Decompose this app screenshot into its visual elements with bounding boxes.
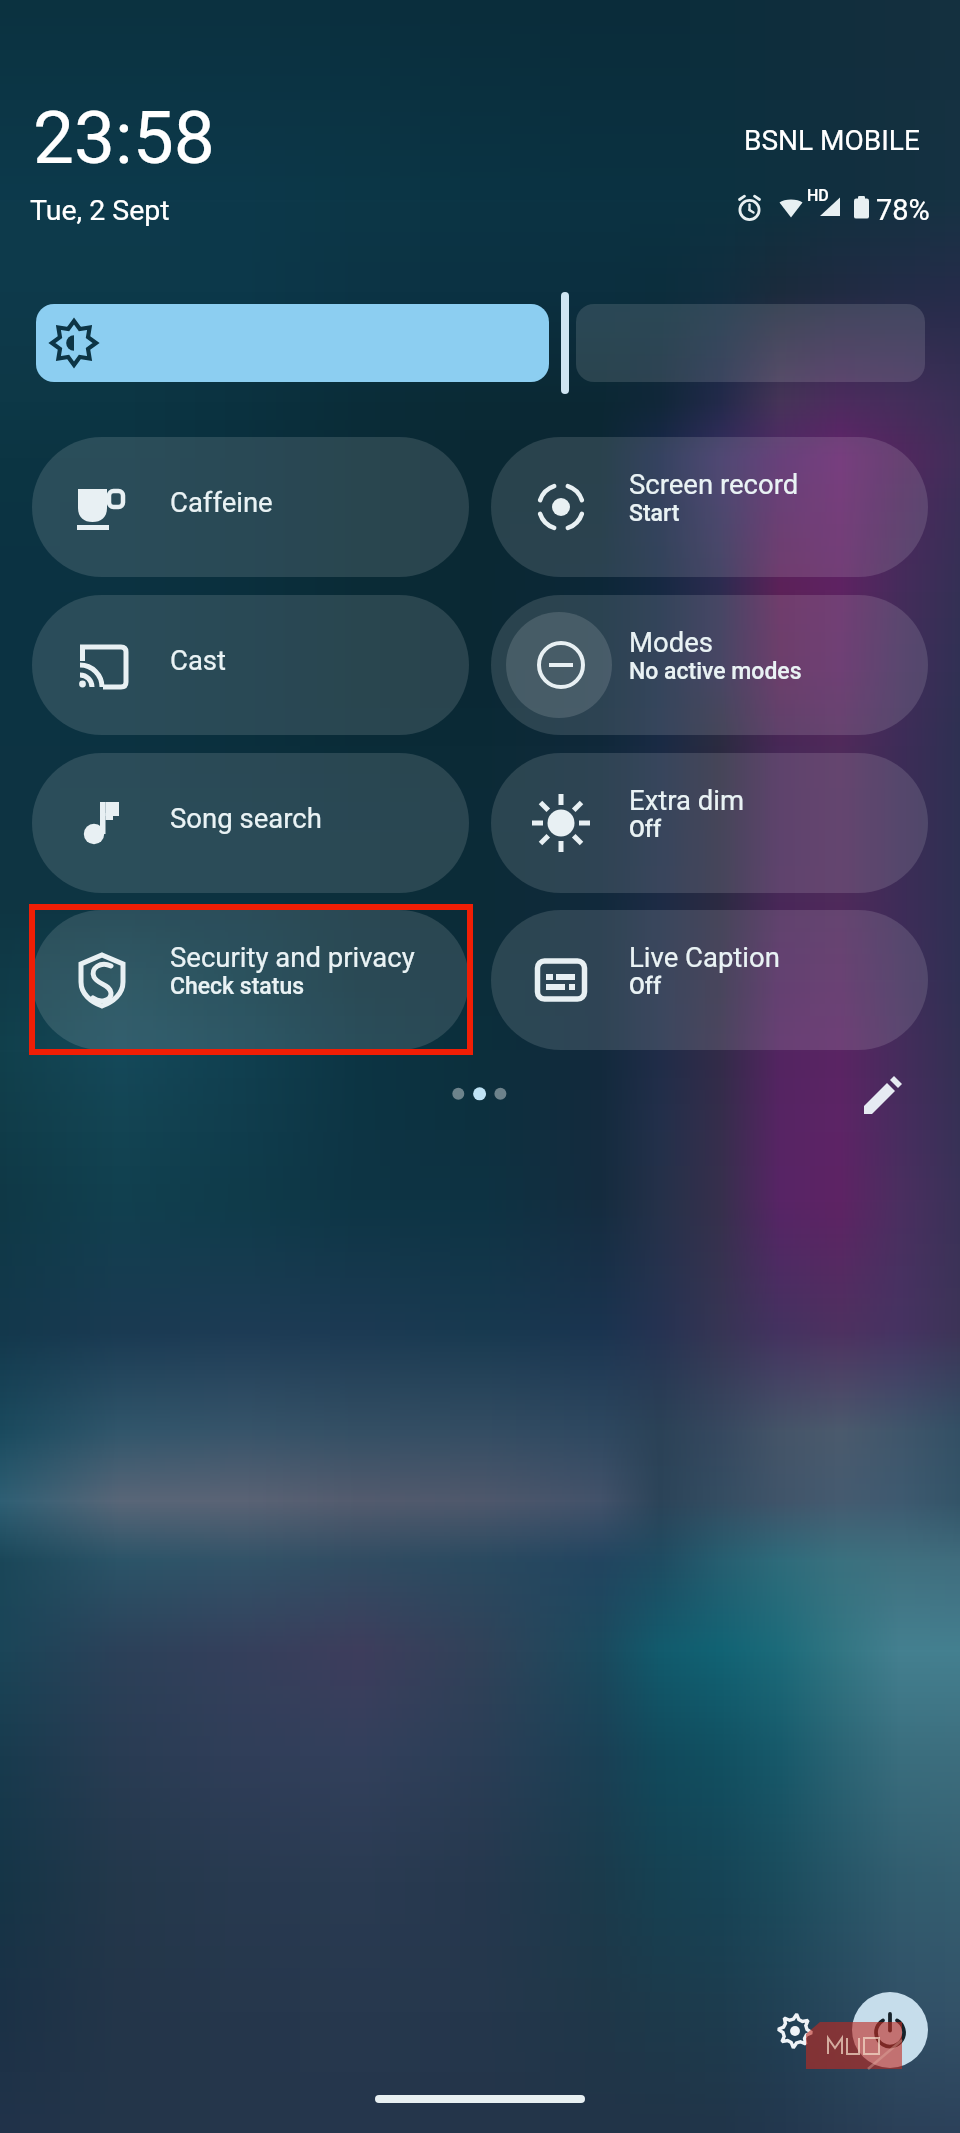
button[interactable]: Song search bbox=[32, 753, 469, 893]
button[interactable]: Brightness bbox=[36, 304, 549, 382]
staticText: 23:58 bbox=[33, 95, 215, 181]
button[interactable]: Screen record bbox=[491, 437, 928, 577]
button[interactable]: Modes bbox=[491, 595, 928, 735]
staticText: No active modes bbox=[629, 658, 802, 685]
staticText: HD bbox=[807, 186, 829, 205]
staticText: BSNL MOBILE bbox=[744, 124, 920, 157]
staticText: Live Caption bbox=[629, 941, 780, 973]
staticText: Start bbox=[629, 500, 680, 527]
button[interactable]: Live Caption bbox=[491, 910, 928, 1050]
button[interactable]: Cast bbox=[32, 595, 469, 735]
staticText: Security and privacy bbox=[170, 941, 415, 973]
button[interactable]: Extra dim bbox=[491, 753, 928, 893]
staticText: Check status bbox=[170, 973, 305, 1000]
staticText: Tue, 2 Sept bbox=[30, 194, 170, 227]
button[interactable]: Edit tiles bbox=[856, 1068, 910, 1122]
staticText: Caffeine bbox=[170, 486, 273, 518]
staticText: Song search bbox=[170, 802, 322, 834]
button[interactable]: Volume bbox=[576, 304, 925, 382]
staticText: Screen record bbox=[629, 468, 799, 500]
staticText: Off bbox=[629, 973, 662, 1000]
button[interactable]: Caffeine bbox=[32, 437, 469, 577]
button[interactable]: Security and privacy bbox=[32, 910, 469, 1050]
button[interactable]: Settings bbox=[767, 2003, 823, 2059]
staticText: Cast bbox=[170, 644, 227, 676]
staticText: Off bbox=[629, 816, 662, 843]
staticText: 78% bbox=[876, 193, 930, 227]
button[interactable]: Power bbox=[852, 1992, 928, 2068]
staticText: Extra dim bbox=[629, 784, 745, 816]
staticText: Modes bbox=[629, 626, 713, 658]
